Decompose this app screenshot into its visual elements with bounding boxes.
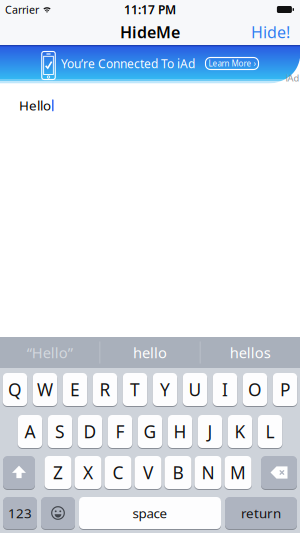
staticText: P xyxy=(280,378,290,401)
button[interactable]: W xyxy=(33,373,57,406)
button[interactable]: C xyxy=(104,456,131,489)
button[interactable]: T xyxy=(123,373,147,406)
staticText: X xyxy=(83,461,93,484)
staticText: C xyxy=(112,461,123,484)
button[interactable]: P xyxy=(273,373,297,406)
button[interactable]: hellos xyxy=(201,337,300,368)
staticText: N xyxy=(201,461,214,484)
button[interactable]: iAd banner: Learn More xyxy=(0,45,300,85)
button[interactable]: L xyxy=(258,415,282,448)
button[interactable]: Z xyxy=(44,456,71,489)
staticText: 123 xyxy=(8,504,32,522)
button[interactable]: Q xyxy=(3,373,27,406)
staticText: U xyxy=(188,378,201,401)
staticText: R xyxy=(99,378,110,401)
staticText: Hide! xyxy=(251,21,290,43)
staticText: H xyxy=(173,420,186,443)
staticText: A xyxy=(24,420,35,443)
button[interactable]: “Hello” xyxy=(0,337,99,368)
button[interactable]: O xyxy=(243,373,267,406)
button[interactable]: hello xyxy=(100,337,200,368)
staticText: V xyxy=(143,461,153,484)
staticText: 11:17 PM xyxy=(124,1,176,17)
staticText: W xyxy=(37,378,53,401)
staticText: space xyxy=(132,504,167,522)
staticText: You’re Connected To iAd xyxy=(61,55,195,71)
button[interactable]: Shift xyxy=(3,456,35,489)
staticText: O xyxy=(248,378,262,401)
staticText: M xyxy=(230,461,246,484)
staticText: E xyxy=(70,378,80,401)
button[interactable]: H xyxy=(168,415,192,448)
staticText: I xyxy=(222,378,228,401)
button[interactable]: Y xyxy=(153,373,177,406)
button[interactable]: Emoji xyxy=(41,497,75,529)
staticText: Q xyxy=(8,378,22,401)
button[interactable]: J xyxy=(198,415,222,448)
staticText: Y xyxy=(160,378,170,401)
button[interactable]: N xyxy=(194,456,221,489)
staticText: “Hello” xyxy=(27,343,73,362)
button[interactable]: V xyxy=(134,456,161,489)
staticText: K xyxy=(234,420,245,443)
staticText: D xyxy=(83,420,96,443)
button[interactable]: R xyxy=(93,373,117,406)
button[interactable]: S xyxy=(48,415,72,448)
staticText: F xyxy=(115,420,124,443)
staticText: Carrier xyxy=(5,2,39,17)
button[interactable]: space xyxy=(79,497,221,529)
staticText: iAd xyxy=(285,72,299,84)
staticText: hellos xyxy=(230,343,271,362)
button[interactable]: K xyxy=(228,415,252,448)
staticText: J xyxy=(207,420,212,443)
button[interactable]: I xyxy=(213,373,237,406)
staticText: L xyxy=(265,420,274,443)
button[interactable]: B xyxy=(164,456,191,489)
button[interactable]: U xyxy=(183,373,207,406)
staticText: Learn More › xyxy=(208,58,255,69)
staticText: HideMe xyxy=(120,21,180,43)
staticText: Z xyxy=(53,461,63,484)
button[interactable]: return xyxy=(225,497,297,529)
button[interactable]: X xyxy=(74,456,101,489)
staticText: Hello xyxy=(19,96,51,114)
staticText: return xyxy=(241,504,281,522)
button[interactable]: E xyxy=(63,373,87,406)
staticText: B xyxy=(172,461,183,484)
button[interactable]: Delete xyxy=(261,456,297,489)
button[interactable]: A xyxy=(18,415,42,448)
button[interactable]: F xyxy=(108,415,132,448)
button[interactable]: M xyxy=(224,456,251,489)
staticText: G xyxy=(143,420,156,443)
button[interactable]: G xyxy=(138,415,162,448)
button[interactable]: D xyxy=(78,415,102,448)
staticText: T xyxy=(130,378,140,401)
button[interactable]: 123 xyxy=(3,497,37,529)
staticText: S xyxy=(55,420,65,443)
staticText: hello xyxy=(133,343,167,362)
button[interactable]: Hide! xyxy=(251,21,290,43)
